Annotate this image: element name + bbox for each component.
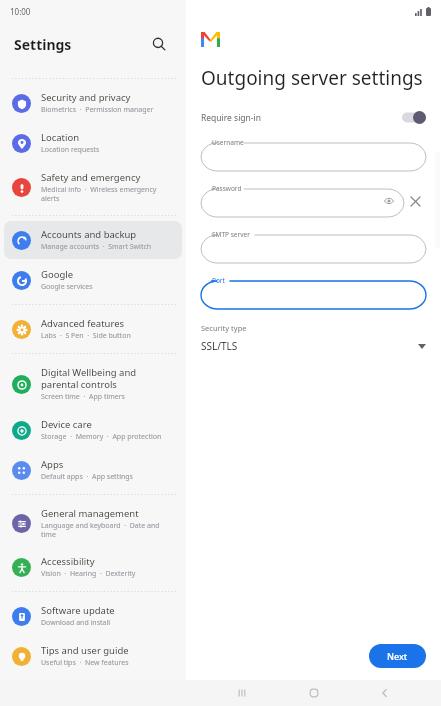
staticText: Storage · Memory · App protection [41, 432, 162, 442]
button[interactable]: Location [4, 124, 182, 162]
staticText: Accessibility [41, 555, 95, 568]
button[interactable]: SSL/TLS [201, 339, 426, 353]
staticText: Username [212, 138, 244, 147]
staticText: Medical info · Wireless emergency alerts [41, 185, 174, 203]
staticText: Security type [201, 323, 247, 333]
staticText: Advanced features [41, 317, 125, 330]
button[interactable]: Search [146, 31, 172, 57]
staticText: Next [387, 650, 408, 662]
button[interactable]: Home [299, 680, 329, 706]
button[interactable]: Next [369, 644, 426, 668]
button[interactable]: Google [4, 261, 182, 299]
button[interactable]: Safety and emergency [4, 164, 182, 210]
staticText: Location [41, 131, 80, 144]
button[interactable]: Device care [4, 411, 182, 449]
staticText: Password [212, 184, 242, 193]
staticText: Google services [41, 282, 93, 292]
staticText: Digital Wellbeing and parental controls [41, 366, 174, 391]
button[interactable]: Security and privacy [4, 84, 182, 122]
staticText: Useful tips · New features [41, 658, 129, 668]
staticText: Labs · S Pen · Side button [41, 331, 131, 341]
staticText: SSL/TLS [201, 339, 238, 353]
staticText: Port [212, 276, 225, 285]
button[interactable]: Back [370, 680, 400, 706]
button[interactable]: Software update [4, 597, 182, 635]
staticText: Vision · Hearing · Dexterity [41, 569, 136, 579]
button[interactable]: Tips and user guide [4, 637, 182, 675]
button[interactable]: Require sign-in [201, 111, 426, 124]
staticText: Device care [41, 418, 92, 431]
button[interactable]: Apps [4, 451, 182, 489]
staticText: SMTP server [212, 230, 250, 239]
staticText: Settings [14, 35, 72, 54]
staticText: Outgoing server settings [201, 65, 423, 91]
staticText: 10:00 [10, 6, 31, 17]
staticText: Location requests [41, 145, 100, 155]
staticText: General management [41, 507, 139, 520]
staticText: Language and keyboard · Date and time [41, 521, 174, 539]
button[interactable]: Accessibility [4, 548, 182, 586]
staticText: Accounts and backup [41, 228, 137, 241]
staticText: Default apps · App settings [41, 472, 133, 482]
staticText: Google [41, 268, 74, 281]
button[interactable]: Advanced features [4, 310, 182, 348]
button[interactable]: Accounts and backup [4, 221, 182, 259]
staticText: Apps [41, 458, 64, 471]
button[interactable] [402, 111, 426, 124]
staticText: Manage accounts · Smart Switch [41, 242, 152, 252]
staticText: Biometrics · Permission manager [41, 105, 154, 115]
button[interactable]: General management [4, 500, 182, 546]
staticText: Screen time · App timers [41, 392, 125, 402]
staticText: Require sign-in [201, 112, 262, 124]
staticText: Tips and user guide [41, 644, 129, 657]
staticText: Software update [41, 604, 115, 617]
button[interactable]: Digital Wellbeing and parental controls [4, 359, 182, 409]
button[interactable]: Clear [404, 190, 426, 212]
button[interactable]: Show password [382, 194, 396, 208]
button[interactable]: Recent apps [227, 680, 257, 706]
staticText: Download and install [41, 618, 111, 628]
staticText: Security and privacy [41, 91, 131, 104]
staticText: Safety and emergency [41, 171, 141, 184]
